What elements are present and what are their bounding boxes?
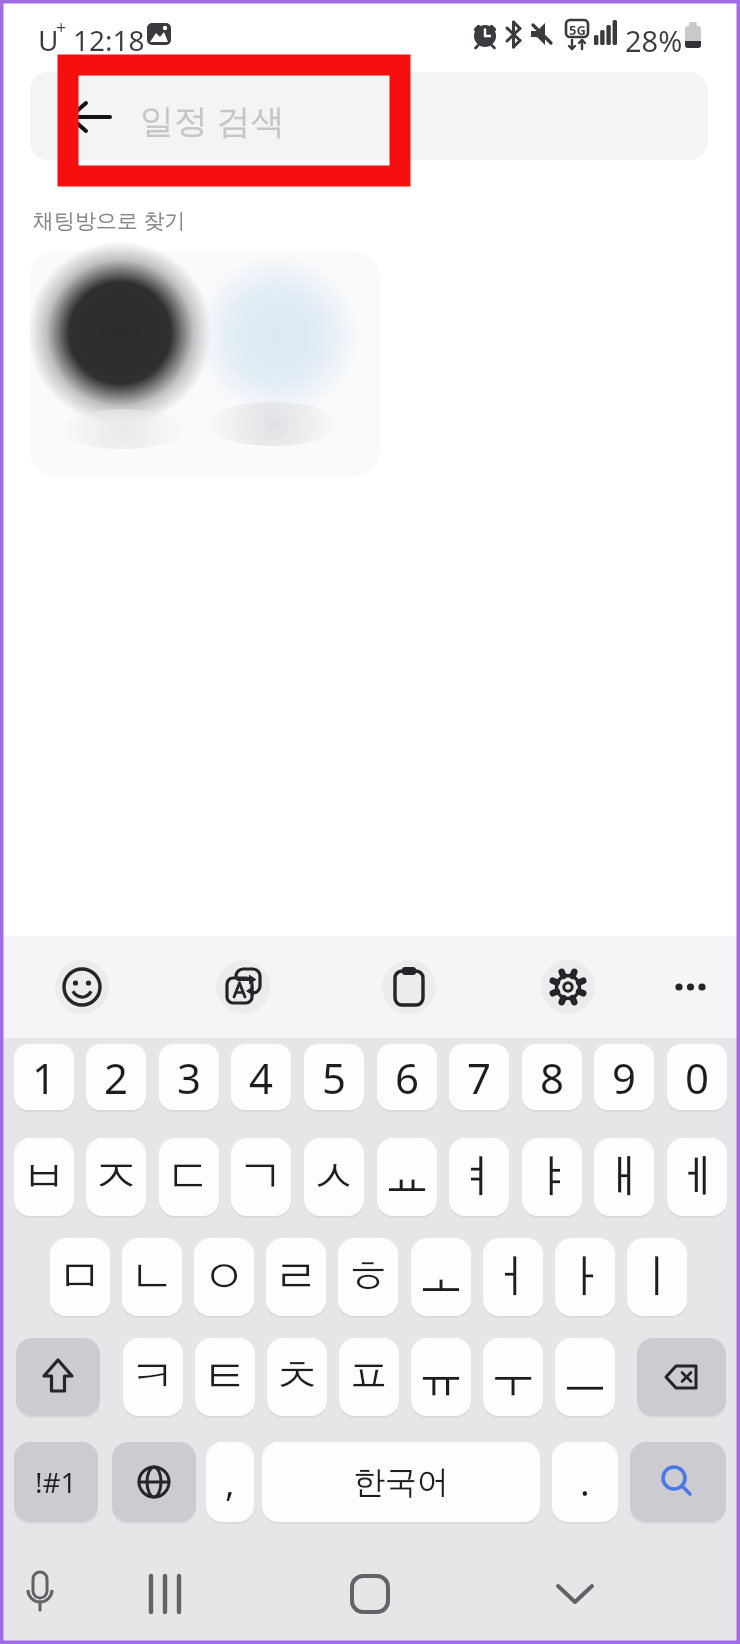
button[interactable]: ㅔ [667,1138,727,1216]
button[interactable]: ㅁ [50,1238,110,1316]
staticText: 12:18 [73,21,145,59]
button[interactable] [346,1570,394,1618]
staticText: ㅐ [601,1148,647,1206]
staticText: 4 [249,1049,274,1106]
button[interactable]: 4 [231,1044,291,1110]
button[interactable]: 0 [667,1044,727,1110]
staticText: ㅜ [490,1348,536,1406]
staticText: ㅔ [674,1148,720,1206]
button[interactable] [16,1338,100,1416]
button[interactable]: ㅡ [555,1338,615,1416]
button[interactable]: ㄴ [122,1238,182,1316]
staticText: 2 [104,1049,129,1106]
button[interactable] [382,960,436,1014]
button[interactable] [630,1442,726,1522]
button[interactable]: ㅑ [522,1138,582,1216]
staticText: ㅇ [201,1248,247,1306]
button[interactable] [666,960,720,1014]
staticText: ㅊ [274,1348,320,1406]
button[interactable]: ㅎ [338,1238,398,1316]
staticText: ㅈ [93,1148,139,1206]
staticText: ㅗ [418,1248,464,1306]
button[interactable]: 7 [449,1044,509,1110]
button[interactable] [551,1570,599,1618]
staticText: ㅎ [345,1248,391,1306]
button[interactable] [216,960,270,1014]
button[interactable]: !#1 [14,1442,98,1522]
staticText: 7 [467,1049,492,1106]
button[interactable]: ㅈ [86,1138,146,1216]
button[interactable]: 2 [86,1044,146,1110]
button[interactable]: ㅛ [377,1138,437,1216]
button[interactable]: 1 [14,1044,74,1110]
button[interactable] [541,960,595,1014]
staticText: ㅣ [634,1248,680,1306]
staticText: ㅅ [311,1148,357,1206]
button[interactable]: , [206,1442,254,1522]
button[interactable]: ㅂ [14,1138,74,1216]
staticText: + [56,15,67,40]
staticText: 5 [322,1049,347,1106]
button[interactable]: 8 [522,1044,582,1110]
staticText: 28% [625,21,683,60]
button[interactable]: ㅊ [267,1338,327,1416]
button[interactable]: . [552,1442,618,1522]
staticText: ㅋ [130,1348,176,1406]
button[interactable]: ㅏ [555,1238,615,1316]
button[interactable]: ㅋ [123,1338,183,1416]
button[interactable]: ㅣ [627,1238,687,1316]
button[interactable]: ㅠ [411,1338,471,1416]
button[interactable]: 3 [159,1044,219,1110]
button[interactable]: 9 [594,1044,654,1110]
button[interactable] [16,1570,64,1618]
staticText: 1 [32,1049,57,1106]
button[interactable] [55,960,109,1014]
button[interactable]: 채팅방으로 찾기 [33,206,186,235]
staticText: . [580,1458,590,1507]
staticText: 0 [685,1049,710,1106]
button[interactable] [112,1442,196,1522]
staticText: ㄴ [129,1248,175,1306]
button[interactable]: ㅇ [194,1238,254,1316]
staticText: ㅌ [202,1348,248,1406]
staticText: ㅕ [456,1148,502,1206]
button[interactable]: 6 [377,1044,437,1110]
button[interactable]: ㄷ [159,1138,219,1216]
staticText: ㅏ [562,1248,608,1306]
button[interactable] [637,1338,726,1416]
staticText: ㅂ [21,1148,67,1206]
button[interactable]: 한국어 [262,1442,540,1522]
button[interactable]: ㅗ [411,1238,471,1316]
button[interactable]: ㄹ [266,1238,326,1316]
button[interactable]: ㅐ [594,1138,654,1216]
button[interactable]: ㅍ [339,1338,399,1416]
staticText: ㄹ [273,1248,319,1306]
button[interactable] [141,1570,189,1618]
staticText: , [225,1458,235,1507]
staticText: ㅓ [490,1248,536,1306]
button[interactable]: 5 [304,1044,364,1110]
staticText: 5G [569,21,586,39]
staticText: ㅡ [562,1348,608,1406]
button[interactable]: ㅌ [195,1338,255,1416]
staticText: ㅍ [346,1348,392,1406]
button[interactable]: ㅓ [483,1238,543,1316]
button[interactable]: ㅕ [449,1138,509,1216]
staticText: ㅛ [384,1148,430,1206]
staticText: 6 [395,1049,420,1106]
staticText: ㅑ [529,1148,575,1206]
button[interactable]: ㄱ [231,1138,291,1216]
staticText: ㄱ [238,1148,284,1206]
staticText: 9 [612,1049,637,1106]
staticText: ㅁ [57,1248,103,1306]
staticText: 한국어 [353,1462,449,1502]
staticText: ㄷ [166,1148,212,1206]
button[interactable]: 일정 검색 [30,72,708,160]
staticText: 일정 검색 [140,97,285,143]
button[interactable]: ㅅ [304,1138,364,1216]
staticText: 3 [177,1049,202,1106]
staticText: U [38,21,59,59]
staticText: 8 [540,1049,565,1106]
staticText: ㅠ [418,1348,464,1406]
button[interactable]: ㅜ [483,1338,543,1416]
